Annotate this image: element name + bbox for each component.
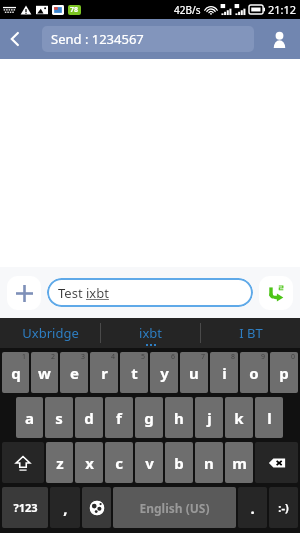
button[interactable]: c [105, 442, 133, 483]
staticText: p [279, 363, 289, 383]
staticText: ixbt [86, 284, 109, 302]
button[interactable]: m [225, 442, 253, 483]
button[interactable]: p [270, 352, 298, 393]
staticText: k [234, 408, 244, 428]
staticText: 6 [171, 352, 176, 362]
staticText: f [116, 408, 122, 428]
button[interactable]: y [150, 352, 178, 393]
staticText: t [131, 363, 138, 383]
staticText: l [267, 408, 272, 428]
button[interactable]: Back [0, 24, 30, 54]
button[interactable]: r [90, 352, 118, 393]
staticText: v [145, 453, 154, 473]
staticText: 1 [22, 352, 27, 362]
button[interactable]: o [240, 352, 268, 393]
button[interactable]: w [31, 352, 58, 393]
button[interactable]: f [105, 397, 133, 438]
staticText: d [84, 408, 94, 428]
staticText: i [222, 363, 227, 383]
button[interactable]: q [2, 352, 29, 393]
staticText: 2 [51, 352, 56, 362]
staticText: 9 [261, 352, 266, 362]
button[interactable]: Test [47, 278, 253, 307]
button[interactable]: Change language [82, 487, 111, 528]
staticText: m [232, 453, 247, 473]
staticText: English (US) [139, 500, 210, 516]
staticText: n [204, 453, 214, 473]
staticText: y [160, 363, 169, 383]
staticText: Send : 1234567 [51, 30, 144, 48]
button[interactable]: h [165, 397, 193, 438]
staticText: r [101, 363, 108, 383]
staticText: 42B/s [174, 3, 201, 17]
button[interactable]: English (US) [113, 487, 236, 528]
button[interactable]: i [210, 352, 238, 393]
button[interactable]: :-) [269, 487, 298, 528]
button[interactable]: b [165, 442, 193, 483]
button[interactable]: I BT [201, 318, 300, 348]
button[interactable]: ixbt [101, 318, 200, 348]
button[interactable]: , [50, 487, 80, 528]
button[interactable]: j [195, 397, 223, 438]
staticText: Uxbridge [22, 324, 79, 342]
button[interactable]: g [135, 397, 163, 438]
staticText: j [207, 408, 212, 428]
staticText: ixbt [139, 324, 162, 342]
staticText: h [174, 408, 184, 428]
button[interactable]: k [225, 397, 253, 438]
button[interactable]: z [46, 442, 73, 483]
button[interactable]: Send : 1234567 [42, 26, 254, 52]
staticText: z [56, 453, 64, 473]
staticText: 8 [231, 352, 236, 362]
button[interactable]: l [255, 397, 283, 438]
staticText: c [115, 453, 123, 473]
button[interactable]: Contacts [263, 23, 295, 55]
button[interactable]: d [75, 397, 103, 438]
staticText: Test [58, 284, 86, 302]
staticText: I BT [239, 324, 263, 342]
button[interactable]: Add attachment [7, 276, 41, 310]
staticText: x [85, 453, 94, 473]
button[interactable]: Shift [2, 442, 44, 483]
staticText: . [250, 498, 255, 518]
staticText: u [189, 363, 199, 383]
button[interactable]: Uxbridge [0, 318, 100, 348]
staticText: 5 [141, 352, 146, 362]
button[interactable]: x [75, 442, 103, 483]
staticText: g [144, 408, 154, 428]
staticText: 4 [111, 352, 116, 362]
button[interactable]: Send [259, 276, 293, 310]
staticText: 78 [70, 5, 79, 15]
staticText: 0 [291, 352, 296, 362]
button[interactable]: s [45, 397, 73, 438]
staticText: :-) [278, 500, 289, 515]
staticText: o [249, 363, 259, 383]
staticText: w [38, 363, 51, 383]
staticText: 21:12 [268, 2, 297, 17]
button[interactable]: . [238, 487, 267, 528]
button[interactable]: ?123 [2, 487, 48, 528]
staticText: q [11, 363, 21, 383]
button[interactable]: a [16, 397, 43, 438]
staticText: 7 [201, 352, 206, 362]
staticText: e [70, 363, 79, 383]
button[interactable]: e [60, 352, 88, 393]
button[interactable]: u [180, 352, 208, 393]
staticText: a [25, 408, 34, 428]
staticText: ?123 [13, 500, 38, 515]
staticText: b [174, 453, 184, 473]
staticText: , [63, 498, 68, 518]
staticText: 3 [81, 352, 86, 362]
button[interactable]: t [120, 352, 148, 393]
button[interactable]: n [195, 442, 223, 483]
button[interactable]: Backspace [255, 442, 298, 483]
button[interactable]: v [135, 442, 163, 483]
staticText: s [55, 408, 63, 428]
